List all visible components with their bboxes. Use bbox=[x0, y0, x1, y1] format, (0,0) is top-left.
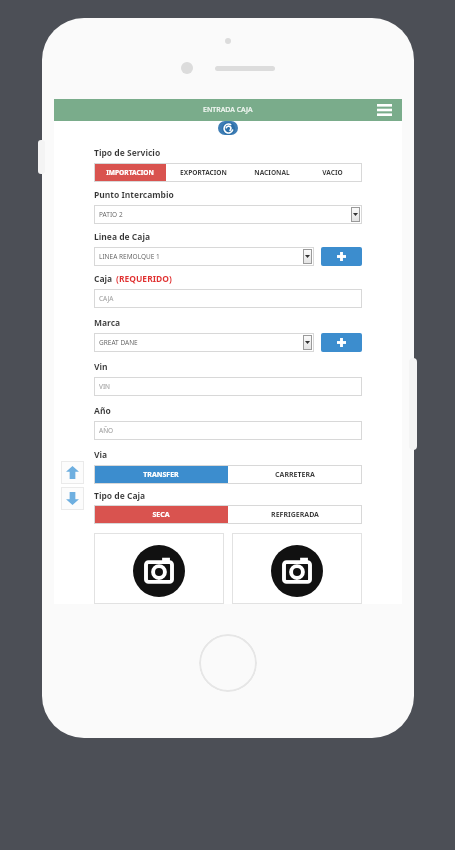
staticText: AÑO bbox=[99, 426, 114, 435]
button[interactable]: VIN bbox=[94, 377, 362, 396]
staticText: EXPORTACION bbox=[180, 168, 227, 177]
staticText: Caja bbox=[94, 273, 113, 285]
button[interactable]: Subir bbox=[61, 461, 84, 484]
staticText: Tipo de Servicio bbox=[94, 147, 161, 159]
button[interactable]: LINEA REMOLQUE 1 bbox=[94, 247, 314, 266]
staticText: TRANSFER bbox=[143, 470, 179, 480]
button[interactable]: VACIO bbox=[303, 163, 362, 182]
staticText: Punto Intercambio bbox=[94, 189, 174, 201]
staticText: CAJA bbox=[99, 294, 114, 303]
button[interactable]: Agregar bbox=[321, 333, 362, 352]
button[interactable]: NACIONAL bbox=[241, 163, 303, 182]
staticText: IMPORTACION bbox=[106, 168, 154, 177]
button[interactable]: EXPORTACION bbox=[166, 163, 241, 182]
staticText: Año bbox=[94, 405, 111, 417]
button[interactable]: AÑO bbox=[94, 421, 362, 440]
staticText: REFRIGERADA bbox=[271, 510, 319, 520]
staticText: Tipo de Caja bbox=[94, 490, 146, 502]
button[interactable]: SECA bbox=[94, 505, 228, 524]
staticText: (REQUERIDO) bbox=[116, 273, 172, 285]
staticText: VACIO bbox=[322, 168, 343, 177]
button[interactable]: REFRIGERADA bbox=[228, 505, 362, 524]
staticText: PATIO 2 bbox=[99, 210, 123, 219]
button[interactable]: CAJA bbox=[94, 289, 362, 308]
button[interactable]: Bajar bbox=[61, 487, 84, 510]
button[interactable]: TRANSFER bbox=[94, 465, 228, 484]
staticText: LINEA REMOLQUE 1 bbox=[99, 252, 160, 261]
button[interactable]: FOTO PLACA TRACTO bbox=[94, 533, 224, 604]
button[interactable]: CARRETERA bbox=[228, 465, 362, 484]
button[interactable]: Menú bbox=[374, 100, 394, 120]
staticText: Vin bbox=[94, 361, 108, 373]
staticText: SECA bbox=[152, 510, 170, 520]
staticText: ENTRADA CAJA bbox=[203, 105, 253, 115]
button[interactable]: PATIO 2 bbox=[94, 205, 362, 224]
staticText: NACIONAL bbox=[254, 168, 290, 177]
button[interactable]: Inicio bbox=[199, 634, 257, 692]
button[interactable]: IMPORTACION bbox=[94, 163, 166, 182]
staticText: Via bbox=[94, 449, 108, 461]
button[interactable]: GREAT DANE bbox=[94, 333, 314, 352]
staticText: GREAT DANE bbox=[99, 338, 138, 347]
button[interactable]: Agregar bbox=[321, 247, 362, 266]
button[interactable]: FOTO TRACTOR bbox=[232, 533, 362, 604]
staticText: Marca bbox=[94, 317, 121, 329]
staticText: CARRETERA bbox=[275, 470, 315, 480]
staticText: VIN bbox=[99, 382, 111, 391]
staticText: Linea de Caja bbox=[94, 231, 151, 243]
